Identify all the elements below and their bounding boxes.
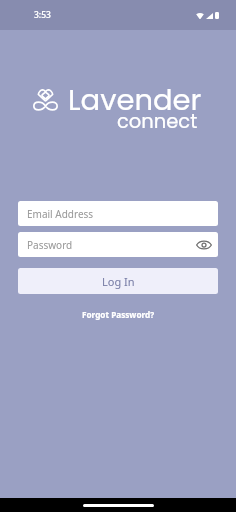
button[interactable]: Log In — [18, 268, 218, 294]
staticText: Password — [27, 238, 73, 252]
staticText: Lavender — [68, 80, 202, 121]
button[interactable]: Forgot Password? — [76, 306, 161, 323]
staticText: connect — [117, 108, 198, 135]
button[interactable]: Email Address — [18, 201, 218, 226]
staticText: 3:53 — [34, 9, 51, 21]
staticText: Log In — [102, 274, 135, 289]
staticText: Email Address — [27, 207, 94, 221]
button[interactable]: Show password — [194, 235, 214, 255]
button[interactable]: Password — [18, 232, 218, 257]
